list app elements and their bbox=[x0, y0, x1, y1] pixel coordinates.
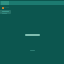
button[interactable]: Menu bbox=[0, 1, 64, 5]
button[interactable]: Status indicator bbox=[2, 7, 4, 9]
button[interactable] bbox=[0, 10, 11, 14]
button[interactable] bbox=[25, 34, 40, 36]
